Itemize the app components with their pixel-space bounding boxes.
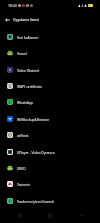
staticText: Yazdırma işlemi hizmeti bbox=[17, 199, 55, 203]
button[interactable]: Yazdırma işlemi hizmeti bbox=[0, 193, 100, 209]
staticText: wifitest bbox=[17, 133, 29, 137]
button[interactable]: Veri kalkanım bbox=[0, 29, 100, 45]
button[interactable]: WAPI certificate bbox=[0, 78, 100, 94]
staticText: Uygulama listesi bbox=[13, 17, 39, 21]
button[interactable]: wifitest bbox=[0, 127, 100, 143]
button[interactable]: XRVO bbox=[0, 160, 100, 176]
button[interactable]: Back bbox=[0, 11, 13, 27]
button[interactable]: XPlayer - Video Dynasce bbox=[0, 144, 100, 160]
staticText: Video (Sistem) bbox=[17, 68, 40, 72]
button[interactable]: WhatsApp bbox=[0, 94, 100, 110]
staticText: Veri kalkanım bbox=[17, 35, 39, 39]
button[interactable]: Video (Sistem) bbox=[0, 62, 100, 78]
button[interactable]: Recents bbox=[7, 208, 31, 223]
button[interactable]: Home bbox=[38, 208, 62, 223]
button[interactable]: Vessel bbox=[0, 45, 100, 61]
staticText: XRVO bbox=[17, 166, 26, 170]
staticText: Yasemin bbox=[17, 182, 31, 186]
staticText: Vessel bbox=[17, 51, 27, 55]
button[interactable]: Yasemin bbox=[0, 176, 100, 192]
button[interactable]: WifiBackup&Restore bbox=[0, 111, 100, 127]
staticText: WAPI certificate bbox=[17, 84, 42, 88]
staticText: WhatsApp bbox=[17, 100, 34, 104]
staticText: XPlayer - Video Dynasce bbox=[17, 150, 55, 154]
staticText: 18:34 bbox=[8, 3, 17, 8]
staticText: WifiBackup&Restore bbox=[17, 117, 50, 121]
